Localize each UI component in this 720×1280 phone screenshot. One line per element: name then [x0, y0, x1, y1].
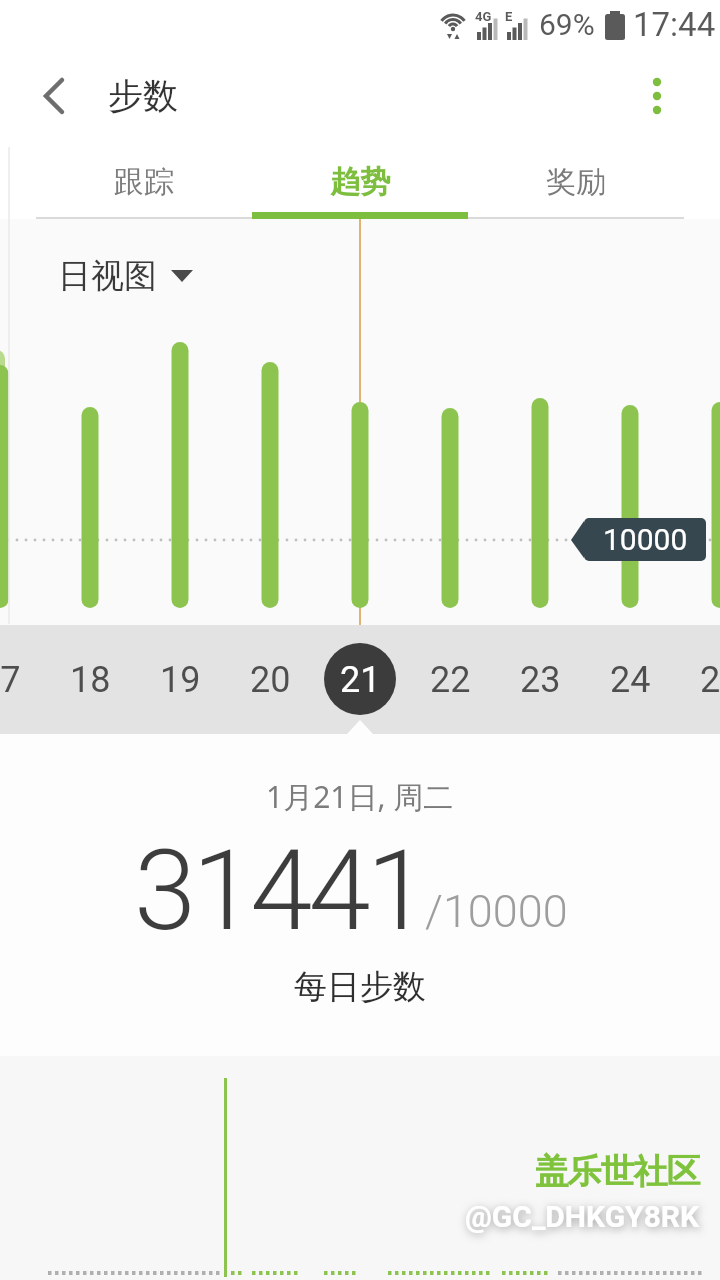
staticText: 24 [610, 659, 651, 701]
button[interactable]: 19 [135, 625, 225, 734]
staticText: 17:44 [633, 5, 716, 44]
staticText: 盖乐世社区 [535, 1150, 700, 1193]
staticText: 25 [700, 659, 720, 701]
button[interactable]: 18 [45, 625, 135, 734]
staticText: 69% [539, 7, 595, 42]
staticText: @GC_DHKGY8RK [465, 1199, 700, 1234]
button[interactable]: 22 [405, 625, 495, 734]
staticText: 23 [520, 659, 561, 701]
staticText: 1月21日, 周二 [266, 776, 454, 817]
button[interactable]: 21 [315, 625, 405, 734]
staticText: 10000 [603, 522, 688, 557]
staticText: 奖励 [546, 163, 606, 201]
staticText: 步数 [108, 74, 178, 118]
button[interactable] [0, 48, 96, 144]
staticText: 跟踪 [114, 163, 174, 201]
staticText: 趋势 [330, 163, 390, 201]
button[interactable]: 跟踪 [36, 144, 252, 219]
staticText: 20 [250, 659, 291, 701]
button[interactable]: 奖励 [468, 144, 684, 219]
staticText: 31441 [134, 825, 425, 956]
button[interactable]: 20 [225, 625, 315, 734]
staticText: 21 [340, 659, 381, 701]
staticText: E [505, 9, 513, 24]
staticText: 每日步数 [294, 966, 426, 1008]
staticText: /10000 [425, 885, 568, 938]
button[interactable]: 23 [495, 625, 585, 734]
staticText: 17 [0, 659, 21, 701]
staticText: 19 [160, 659, 201, 701]
button[interactable]: 25 [675, 625, 720, 734]
staticText: 日视图 [58, 255, 157, 297]
button[interactable]: 24 [585, 625, 675, 734]
button[interactable]: 趋势 [252, 144, 468, 219]
button[interactable] [594, 48, 720, 144]
button[interactable]: 17 [0, 625, 45, 734]
staticText: 18 [70, 659, 111, 701]
button[interactable]: 日视图 [58, 255, 193, 297]
staticText: 22 [430, 659, 471, 701]
staticText: 4G [475, 9, 492, 24]
